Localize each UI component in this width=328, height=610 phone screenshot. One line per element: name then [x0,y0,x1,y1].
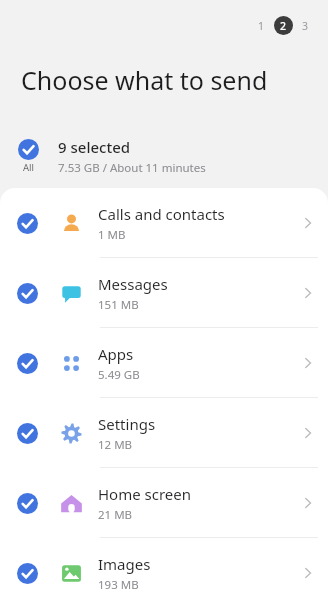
staticText: Home screen [98,484,192,504]
other: Open Apps [295,350,321,376]
staticText: 193 MB [98,577,139,593]
button[interactable]: Messages [0,258,328,328]
staticText: 5.49 GB [98,367,140,383]
button[interactable]: Home screen [0,468,328,538]
staticText: All [23,161,34,174]
button[interactable]: Settings [0,398,328,468]
other: Open Home screen [295,490,321,516]
staticText: Settings [98,414,156,434]
staticText: 1 [258,19,265,33]
staticText: 1 MB [98,227,126,243]
button[interactable]: 1 [252,16,271,35]
staticText: 12 MB [98,437,133,453]
other: Open Images [295,560,321,586]
staticText: 21 MB [98,507,133,523]
button[interactable]: Apps [0,328,328,398]
button[interactable]: 3 [296,16,315,35]
other: Open Messages [295,280,321,306]
staticText: Messages [98,274,168,294]
staticText: Apps [98,344,134,364]
other: Open Calls and contacts [295,210,321,236]
staticText: 2 [280,19,287,33]
button[interactable]: Calls and contacts [0,188,328,258]
button[interactable]: Images [0,538,328,608]
staticText: 151 MB [98,297,139,313]
button[interactable]: All [0,128,328,184]
staticText: Calls and contacts [98,204,225,224]
staticText: 9 selected [58,137,131,157]
staticText: 3 [302,19,309,33]
button[interactable]: 2 [274,16,293,35]
staticText: 7.53 GB / About 11 minutes [58,160,206,176]
staticText: Images [98,554,151,574]
other: Open Settings [295,420,321,446]
staticText: Choose what to send [21,63,268,97]
